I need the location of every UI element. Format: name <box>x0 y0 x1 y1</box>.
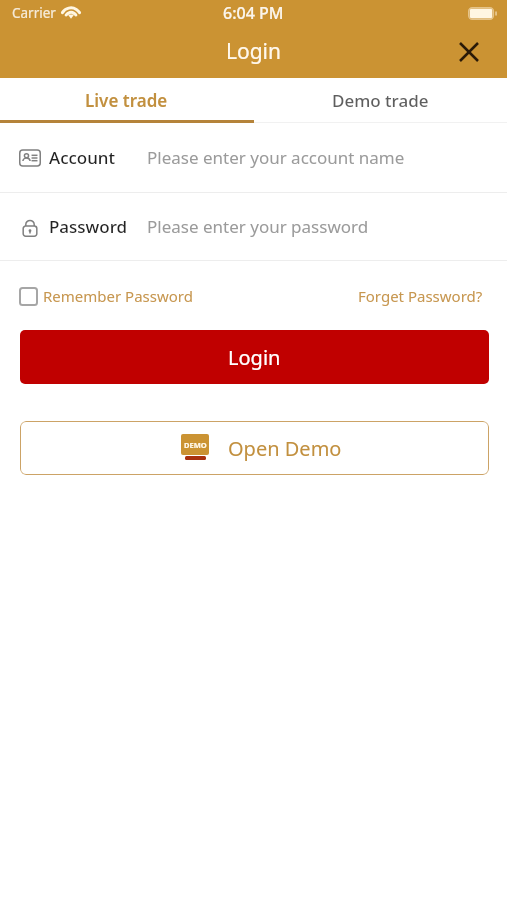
staticText: Remember Password <box>43 286 193 306</box>
staticText: Login <box>228 344 281 371</box>
staticText: Carrier <box>12 4 56 22</box>
button[interactable]: Password <box>0 193 507 260</box>
staticText: Open Demo <box>228 435 342 462</box>
staticText: 6:04 PM <box>223 2 284 24</box>
button[interactable]: Remember Password <box>19 286 193 306</box>
staticText: Password <box>49 215 128 238</box>
button[interactable]: Live trade <box>0 78 253 123</box>
staticText: Account <box>49 146 116 169</box>
button[interactable]: DEMO <box>20 421 489 475</box>
button[interactable]: Forget Password? <box>358 286 483 306</box>
staticText: Live trade <box>85 89 168 112</box>
staticText: Forget Password? <box>358 286 483 306</box>
button[interactable]: Login <box>20 330 489 384</box>
staticText: Please enter your password <box>147 215 369 238</box>
staticText: Demo trade <box>332 89 429 112</box>
button[interactable]: Close <box>449 32 489 72</box>
button[interactable]: Account <box>0 123 507 192</box>
staticText: Please enter your account name <box>147 146 405 169</box>
staticText: DEMO <box>184 440 207 450</box>
staticText: Login <box>226 37 282 66</box>
button[interactable]: Demo trade <box>253 78 507 123</box>
